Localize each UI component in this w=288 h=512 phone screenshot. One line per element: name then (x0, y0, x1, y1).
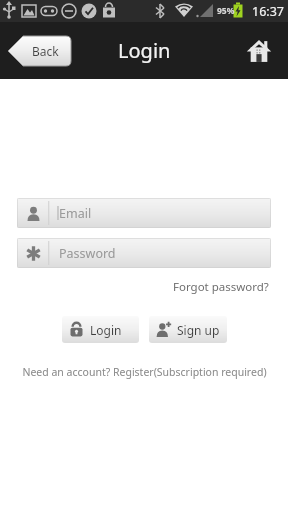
staticText: Login (90, 322, 122, 338)
staticText: 16:37 (252, 3, 284, 20)
button[interactable]: Email (17, 198, 271, 228)
button[interactable]: Sign up (149, 316, 227, 343)
staticText: Login (118, 37, 171, 64)
button[interactable]: Password (17, 238, 271, 268)
staticText: Email (59, 205, 92, 222)
button[interactable]: Need an account? Register(Subscription r… (20, 363, 269, 381)
button[interactable]: Login (62, 316, 139, 343)
button[interactable]: Home (238, 30, 280, 72)
staticText: 95% (217, 5, 235, 17)
button[interactable]: Forgot password? (171, 277, 271, 297)
staticText: Password (59, 245, 116, 262)
button[interactable]: Back (8, 36, 71, 66)
staticText: Sign up (177, 322, 220, 338)
staticText: Need an account? Register(Subscription r… (22, 365, 267, 379)
staticText: Back (32, 43, 59, 59)
staticText: Forgot password? (173, 279, 269, 295)
